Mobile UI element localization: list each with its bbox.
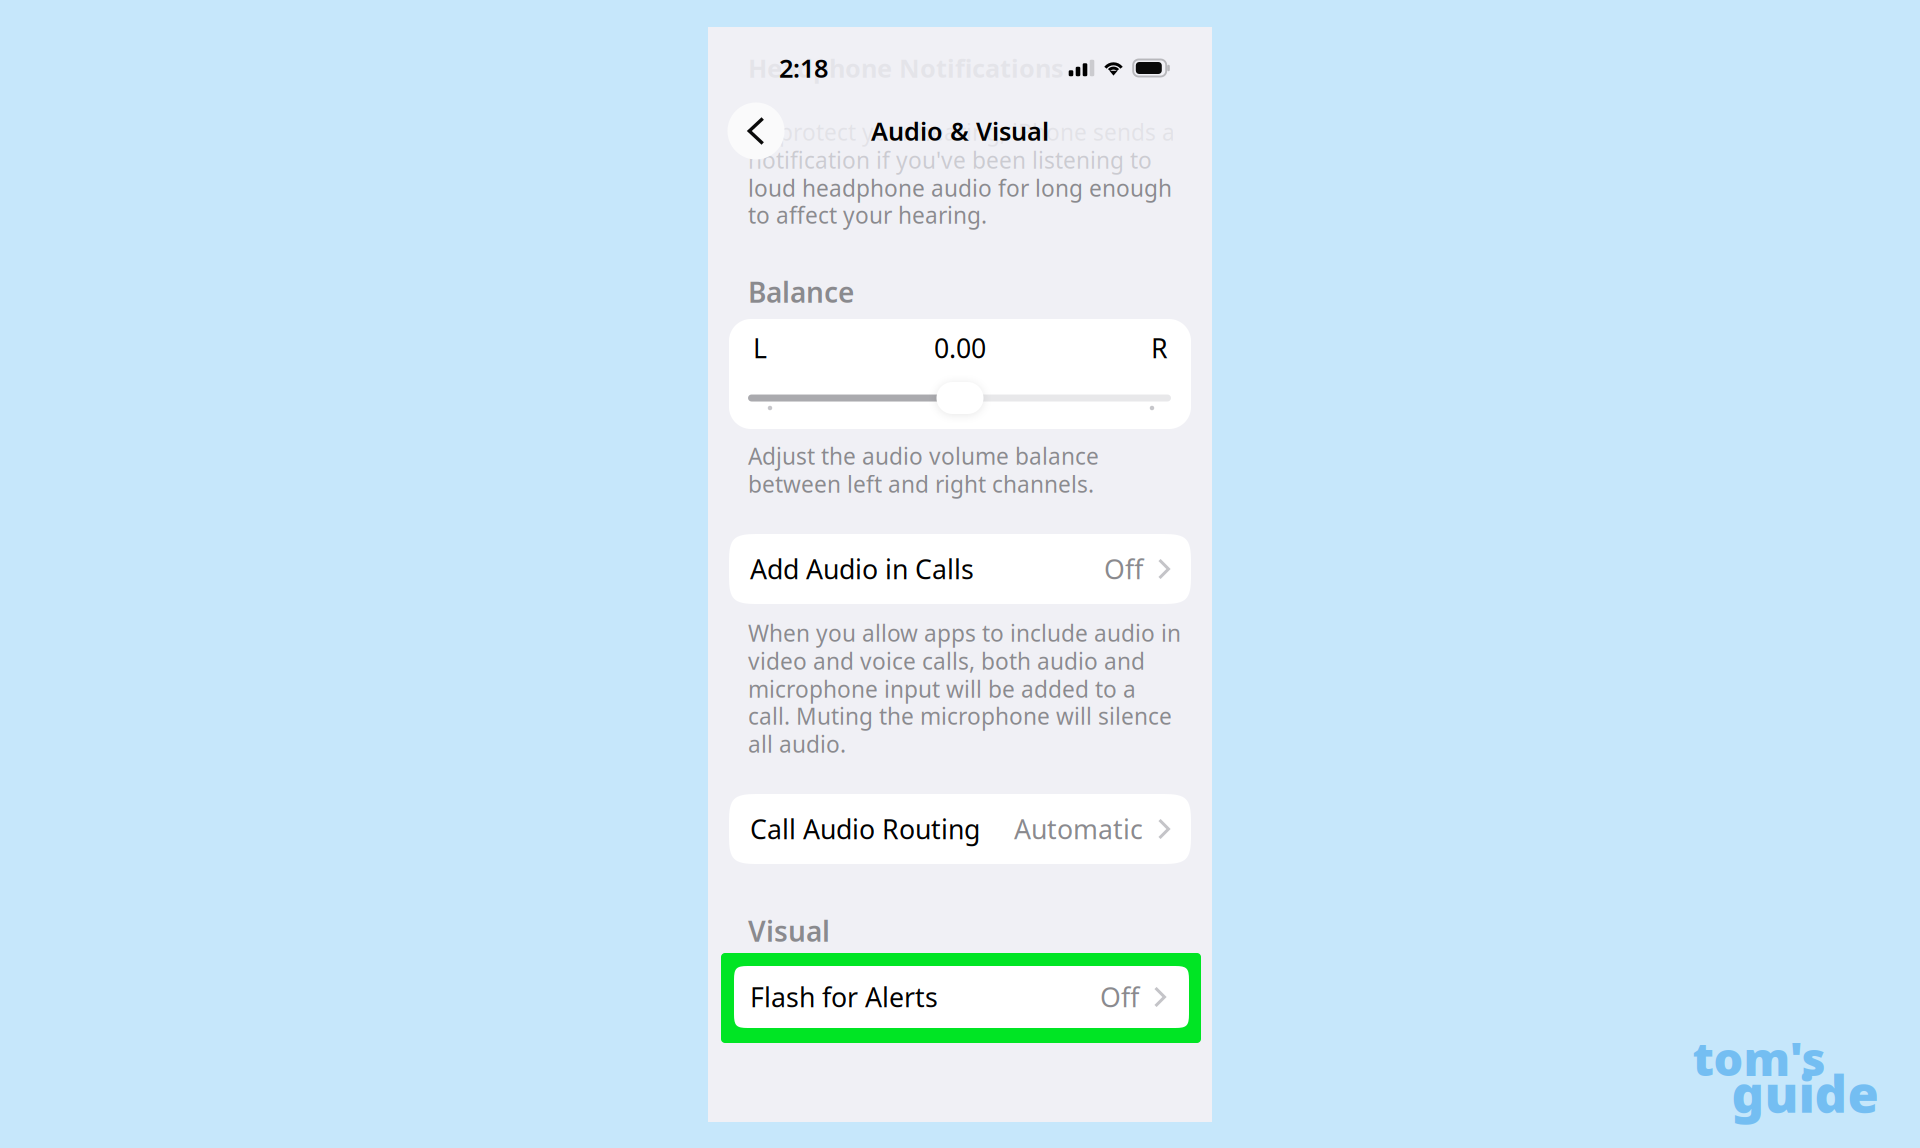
staticText: notification if you've been listening to	[748, 145, 1152, 175]
button[interactable]: Flash for Alerts	[734, 966, 1189, 1028]
staticText: Add Audio in Calls	[750, 551, 974, 587]
staticText: microphone input will be added to a	[748, 674, 1136, 704]
staticText: between left and right channels.	[748, 469, 1094, 499]
staticText: 2:18	[779, 51, 828, 85]
staticText: R	[1151, 330, 1168, 366]
staticText: guide	[1731, 1059, 1878, 1127]
staticText: Automatic	[1014, 811, 1143, 847]
staticText: video and voice calls, both audio and	[748, 646, 1145, 676]
staticText: all audio.	[748, 729, 846, 759]
staticText: loud headphone audio for long enough	[748, 173, 1172, 203]
staticText: Call Audio Routing	[750, 811, 980, 847]
button[interactable]: Call Audio Routing	[729, 794, 1191, 864]
staticText: Balance	[748, 273, 854, 311]
staticText: Audio & Visual	[871, 114, 1049, 148]
staticText: Flash for Alerts	[750, 979, 938, 1015]
staticText: call. Muting the microphone will silence	[748, 701, 1172, 731]
staticText: Adjust the audio volume balance	[748, 441, 1099, 471]
staticText: to affect your hearing.	[748, 200, 987, 230]
button[interactable]: Back	[727, 102, 784, 159]
staticText: 0.00	[934, 330, 986, 366]
staticText: When you allow apps to include audio in	[748, 618, 1181, 648]
staticText: L	[753, 330, 767, 366]
staticText: tom's	[1692, 1027, 1825, 1089]
button[interactable]: Add Audio in Calls	[729, 534, 1191, 604]
staticText: To protect your hearing, iPhone sends a	[748, 117, 1175, 147]
staticText: Off	[1100, 979, 1139, 1015]
staticText: Headphone Notifications	[748, 51, 1064, 85]
staticText: Visual	[748, 912, 830, 950]
staticText: Off	[1104, 551, 1143, 587]
